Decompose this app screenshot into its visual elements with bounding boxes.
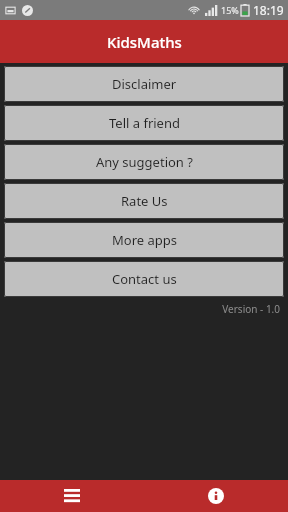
button[interactable]: Rate Us — [4, 183, 284, 219]
button[interactable]: Info — [144, 480, 288, 512]
button[interactable]: Menu — [0, 480, 144, 512]
staticText: Rate Us — [121, 192, 168, 210]
staticText: Contact us — [112, 270, 177, 288]
staticText: More apps — [112, 231, 177, 249]
button[interactable]: More apps — [4, 222, 284, 258]
staticText: Version - 1.0 — [0, 302, 280, 316]
staticText: Disclaimer — [112, 75, 177, 93]
staticText: Tell a friend — [109, 114, 180, 132]
button[interactable]: Any suggetion ? — [4, 144, 284, 180]
staticText: 18:19 — [253, 2, 284, 18]
button[interactable]: Tell a friend — [4, 105, 284, 141]
staticText: Any suggetion ? — [96, 153, 193, 171]
staticText: KidsMaths — [107, 32, 182, 52]
button[interactable]: Contact us — [4, 261, 284, 297]
staticText: 15% — [221, 4, 239, 16]
button[interactable]: Disclaimer — [4, 66, 284, 102]
